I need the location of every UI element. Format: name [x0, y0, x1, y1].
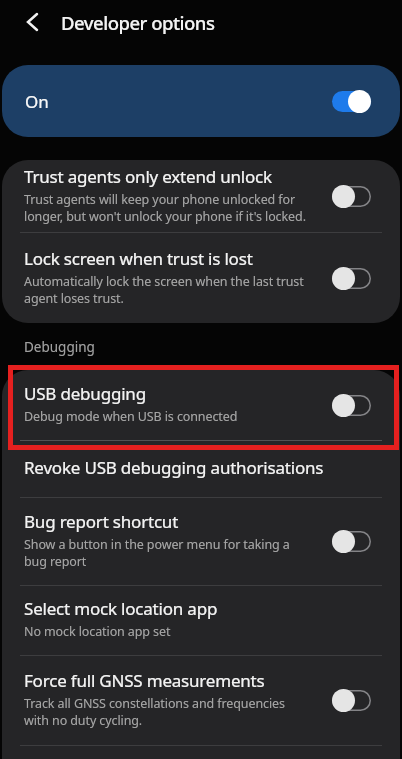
staticText: Track all GNSS constellations and freque…: [24, 695, 285, 728]
button[interactable]: [18, 8, 46, 36]
staticText: Developer options: [61, 10, 215, 35]
staticText: Force full GNSS measurements: [24, 669, 265, 692]
button[interactable]: Trust agents only extend unlock: [2, 160, 400, 232]
staticText: Debugging: [24, 338, 95, 356]
button[interactable]: On: [2, 65, 400, 137]
staticText: Show a button in the power menu for taki…: [24, 536, 290, 569]
staticText: On: [25, 90, 49, 113]
staticText: USB debugging: [24, 382, 146, 405]
staticText: Bug report shortcut: [24, 510, 179, 533]
staticText: Lock screen when trust is lost: [24, 247, 253, 270]
staticText: Revoke USB debugging authorisations: [24, 456, 324, 479]
button[interactable]: USB debugging: [2, 370, 400, 440]
staticText: Trust agents will keep your phone unlock…: [24, 191, 306, 224]
button[interactable]: Revoke USB debugging authorisations: [2, 441, 400, 497]
button[interactable]: Force full GNSS measurements: [2, 656, 400, 745]
button[interactable]: Bug report shortcut: [2, 498, 400, 585]
button[interactable]: Select mock location app: [2, 586, 400, 655]
staticText: No mock location app set: [24, 623, 171, 640]
button[interactable]: Lock screen when trust is lost: [2, 233, 400, 323]
staticText: Select mock location app: [24, 597, 218, 620]
staticText: Trust agents only extend unlock: [24, 165, 272, 188]
staticText: Debug mode when USB is connected: [24, 408, 238, 425]
staticText: Automatically lock the screen when the l…: [24, 273, 304, 306]
